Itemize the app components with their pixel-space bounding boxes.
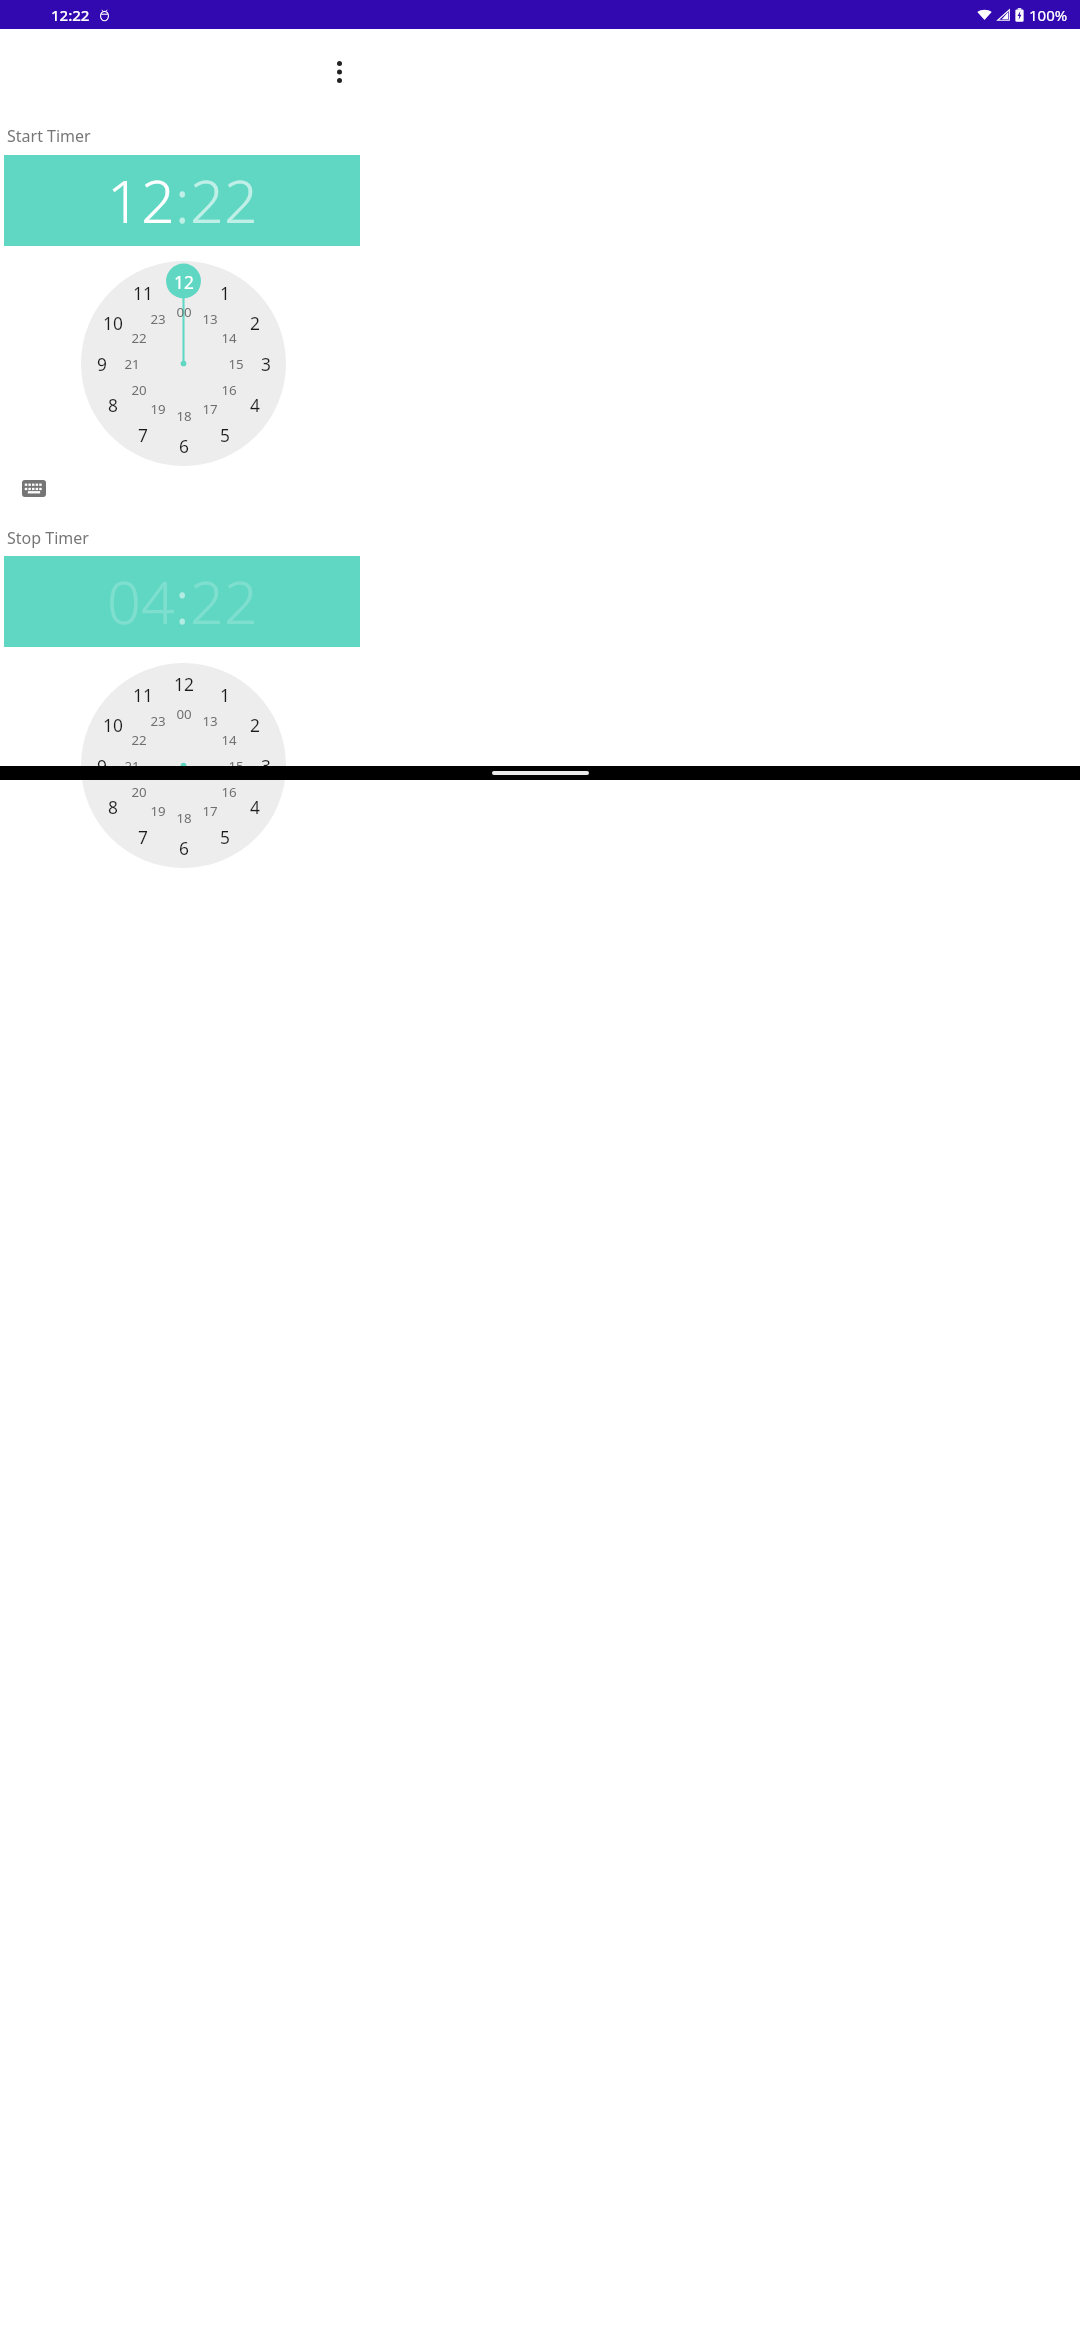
staticText: 18 xyxy=(176,407,192,425)
staticText: 04 xyxy=(107,561,175,642)
staticText: 16 xyxy=(221,783,237,801)
staticText: 10 xyxy=(103,311,123,335)
staticText: 9 xyxy=(97,754,107,778)
staticText: 9 xyxy=(97,352,107,376)
staticText: 11 xyxy=(133,683,153,707)
staticText: 6 xyxy=(179,836,189,860)
staticText: 12 xyxy=(107,160,175,241)
staticText: 8 xyxy=(108,393,118,417)
staticText: 22 xyxy=(190,160,258,241)
staticText: 21 xyxy=(124,757,140,775)
staticText: 5 xyxy=(220,423,230,447)
staticText: 20 xyxy=(131,381,147,399)
staticText: 3 xyxy=(261,754,271,778)
staticText: Start Timer xyxy=(7,125,91,147)
staticText: 7 xyxy=(138,825,148,849)
staticText: 12:22 xyxy=(51,5,90,25)
staticText: 6 xyxy=(179,434,189,458)
staticText: : xyxy=(175,561,190,642)
staticText: 2 xyxy=(250,311,260,335)
staticText: 17 xyxy=(202,400,218,418)
staticText: 13 xyxy=(202,310,218,328)
staticText: 14 xyxy=(221,329,237,347)
staticText: 13 xyxy=(202,712,218,730)
staticText: 4 xyxy=(250,393,260,417)
staticText: 12 xyxy=(174,672,194,696)
staticText: 18 xyxy=(176,809,192,827)
staticText: 19 xyxy=(150,400,166,418)
staticText: 4 xyxy=(250,795,260,819)
staticText: 15 xyxy=(228,355,244,373)
staticText: 21 xyxy=(124,355,140,373)
staticText: 11 xyxy=(133,281,153,305)
staticText: 00 xyxy=(176,705,192,723)
button[interactable]: Home xyxy=(492,771,589,775)
staticText: 14 xyxy=(221,731,237,749)
staticText: 23 xyxy=(150,310,166,328)
staticText: 10 xyxy=(103,713,123,737)
staticText: 19 xyxy=(150,802,166,820)
button[interactable]: More options xyxy=(321,53,358,90)
staticText: 16 xyxy=(221,381,237,399)
staticText: 1 xyxy=(220,281,230,305)
staticText: 8 xyxy=(108,795,118,819)
staticText: 3 xyxy=(261,352,271,376)
staticText: : xyxy=(175,160,190,241)
staticText: 100% xyxy=(1029,5,1068,25)
staticText: 17 xyxy=(202,802,218,820)
staticText: 22 xyxy=(190,561,258,642)
button[interactable]: 04 xyxy=(4,556,360,647)
staticText: 22 xyxy=(131,329,147,347)
staticText: 00 xyxy=(176,303,192,321)
staticText: 22 xyxy=(131,731,147,749)
staticText: Stop Timer xyxy=(7,527,89,549)
staticText: 20 xyxy=(131,783,147,801)
staticText: 7 xyxy=(138,423,148,447)
staticText: 12 xyxy=(174,270,194,294)
staticText: 1 xyxy=(220,683,230,707)
staticText: 5 xyxy=(220,825,230,849)
staticText: 2 xyxy=(250,713,260,737)
button[interactable]: Switch to text input xyxy=(19,476,48,501)
staticText: 23 xyxy=(150,712,166,730)
button[interactable]: 12 xyxy=(4,155,360,246)
button[interactable]: Clock dial xyxy=(81,261,286,466)
button[interactable]: Clock dial xyxy=(81,663,286,868)
staticText: 15 xyxy=(228,757,244,775)
